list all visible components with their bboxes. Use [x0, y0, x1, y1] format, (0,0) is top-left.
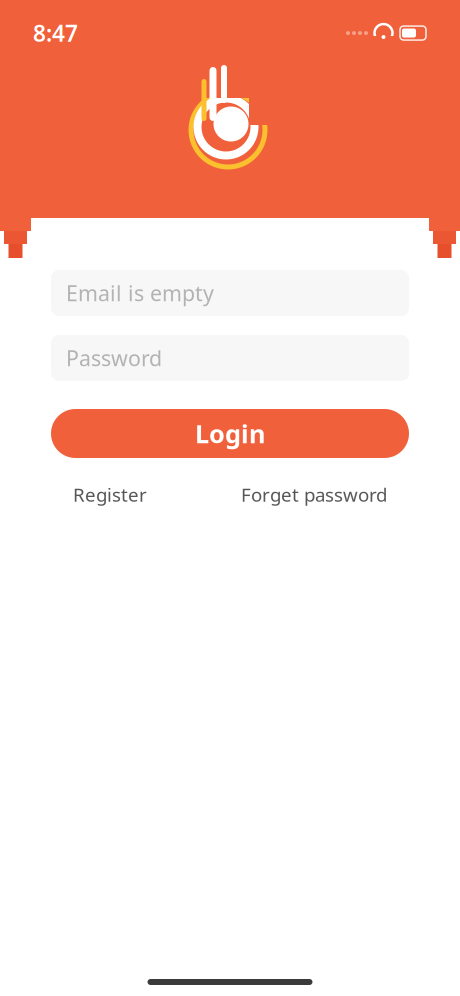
staticText: Login [195, 417, 265, 450]
staticText: 8:47 [33, 18, 78, 48]
button[interactable]: Forget password [231, 474, 397, 515]
staticText: Password [66, 344, 162, 372]
staticText: Email is empty [66, 279, 214, 307]
staticText: Forget password [241, 482, 387, 507]
button[interactable]: Login [51, 409, 409, 458]
staticText: Register [73, 482, 147, 507]
button[interactable]: Register [63, 474, 157, 515]
